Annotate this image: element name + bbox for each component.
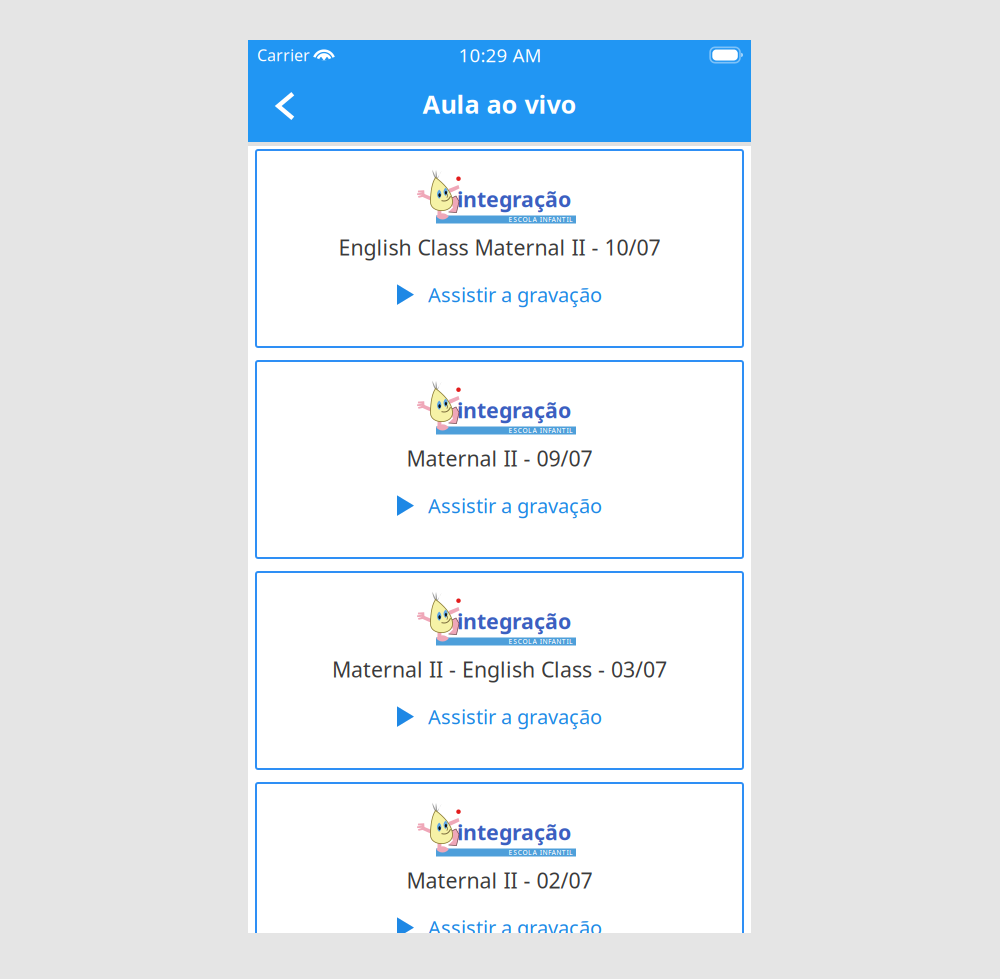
staticText: Maternal II - 09/07 xyxy=(406,444,592,472)
staticText: Assistir a gravação xyxy=(428,703,602,730)
button[interactable]: Assistir a gravação xyxy=(391,698,608,735)
staticText: ESCOLA INFANTIL xyxy=(509,848,573,857)
staticText: ESCOLA INFANTIL xyxy=(509,215,573,224)
staticText: integração xyxy=(457,818,571,846)
staticText: Assistir a gravação xyxy=(428,281,602,308)
button[interactable]: Assistir a gravação xyxy=(391,487,608,524)
staticText: 10:29 AM xyxy=(458,43,541,67)
staticText: integração xyxy=(457,396,571,424)
staticText: integração xyxy=(457,607,571,635)
staticText: integração xyxy=(457,185,571,213)
staticText: Assistir a gravação xyxy=(428,914,602,941)
staticText: Maternal II - English Class - 03/07 xyxy=(332,655,667,683)
staticText: English Class Maternal II - 10/07 xyxy=(338,233,660,261)
staticText: Assistir a gravação xyxy=(428,492,602,519)
button[interactable]: Assistir a gravação xyxy=(391,276,608,313)
staticText: Maternal II - 02/07 xyxy=(406,866,592,894)
staticText: Carrier xyxy=(257,44,310,66)
staticText: ESCOLA INFANTIL xyxy=(509,637,573,646)
button[interactable]: Assistir a gravação xyxy=(391,909,608,946)
button[interactable]: Back xyxy=(248,82,313,129)
staticText: Aula ao vivo xyxy=(422,87,576,121)
staticText: ESCOLA INFANTIL xyxy=(509,426,573,435)
